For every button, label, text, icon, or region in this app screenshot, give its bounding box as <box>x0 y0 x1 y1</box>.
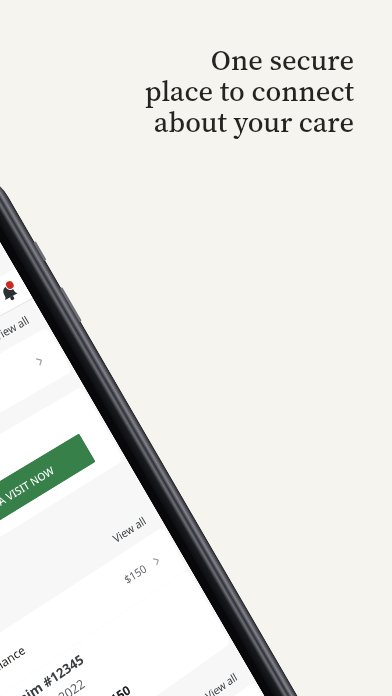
staticText: START A VISIT NOW <box>0 463 57 526</box>
staticText: One secure place to connect about your c… <box>144 40 354 141</box>
button[interactable]: START A VISIT NOW <box>0 433 96 557</box>
staticText: $150 <box>121 561 150 588</box>
button[interactable]: Balance <box>0 536 173 695</box>
button[interactable]: Message from Dr. Lee <box>0 336 57 486</box>
button[interactable]: View all <box>0 312 32 344</box>
staticText: Balance <box>0 641 28 680</box>
staticText: View all <box>203 669 240 696</box>
staticText: Feb 18, 2022 <box>16 674 88 696</box>
button[interactable]: Dr. Amanda Lee <box>72 692 262 696</box>
staticText: $150 <box>101 681 134 696</box>
button[interactable]: View all <box>203 669 240 696</box>
staticText: View all <box>0 312 32 344</box>
button[interactable]: Notifications <box>0 280 21 304</box>
button[interactable]: View all <box>110 513 149 547</box>
staticText: Claim #12345 <box>5 650 87 696</box>
staticText: View all <box>110 513 149 547</box>
